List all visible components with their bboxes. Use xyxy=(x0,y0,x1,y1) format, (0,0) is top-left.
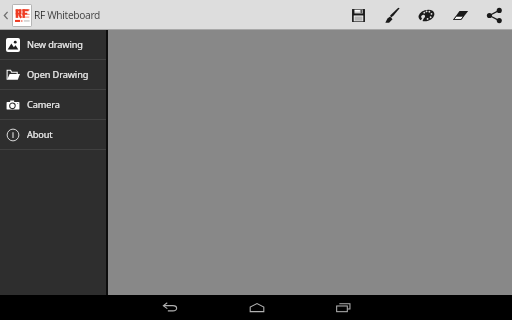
staticText: Camera xyxy=(27,98,60,111)
button[interactable]: Save xyxy=(341,0,375,30)
button[interactable]: Palette xyxy=(409,0,443,30)
staticText: New drawing xyxy=(27,38,83,51)
button[interactable]: Up xyxy=(0,0,12,30)
button[interactable]: Brush xyxy=(375,0,409,30)
staticText: Open Drawing xyxy=(27,68,89,81)
staticText: About xyxy=(27,128,53,141)
button[interactable]: Eraser xyxy=(443,0,477,30)
button[interactable]: Home xyxy=(213,295,300,320)
button[interactable]: Back xyxy=(126,295,213,320)
button[interactable]: Camera xyxy=(0,90,106,119)
staticText: RF Whiteboard xyxy=(34,8,100,22)
button[interactable]: Recents xyxy=(300,295,387,320)
button[interactable]: Open Drawing xyxy=(0,60,106,89)
button[interactable]: Share xyxy=(477,0,511,30)
button[interactable]: New drawing xyxy=(0,30,106,59)
button[interactable]: About xyxy=(0,120,106,149)
